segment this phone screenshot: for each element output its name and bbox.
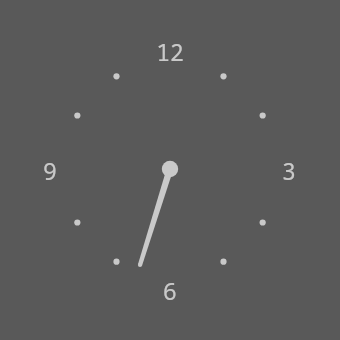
staticText: 6 <box>163 275 177 306</box>
staticText: 9 <box>43 155 57 186</box>
staticText: 12 <box>156 36 184 67</box>
staticText: 3 <box>282 155 296 186</box>
button[interactable]: Analog watch face <box>0 0 340 340</box>
